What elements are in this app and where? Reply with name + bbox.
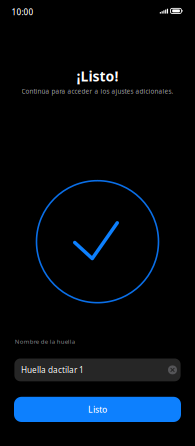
staticText: Nombre de la huella [15, 337, 75, 345]
staticText: Continúa para acceder a los ajustes adic… [21, 87, 173, 96]
staticText: 10:00 [11, 6, 33, 18]
staticText: Listo [88, 403, 107, 415]
staticText: ¡Listo! [76, 66, 118, 86]
button[interactable]: Clear text [168, 365, 177, 374]
staticText: Huella dactilar 1 [21, 364, 84, 376]
button[interactable]: Listo [14, 397, 181, 422]
